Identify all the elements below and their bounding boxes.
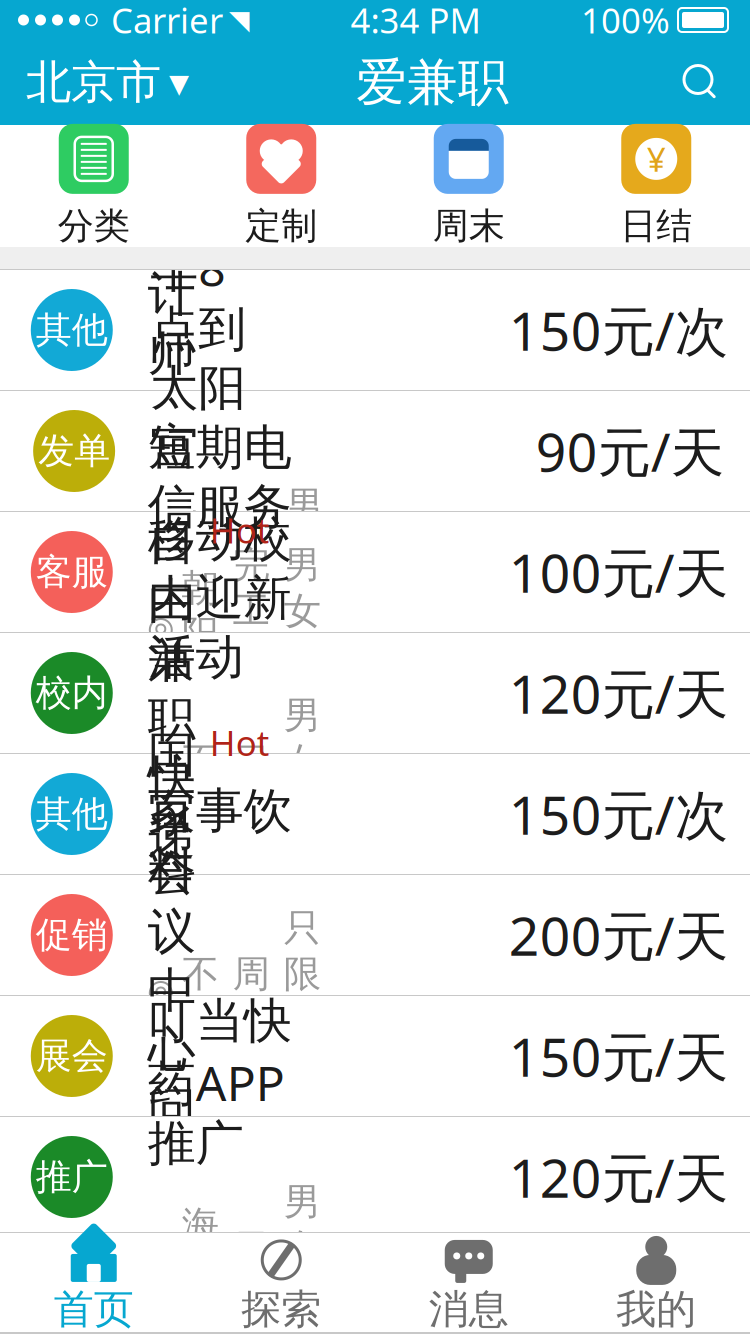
- staticText: 周结: [233, 951, 270, 1043]
- button[interactable]: 客服: [0, 512, 750, 633]
- staticText: 不限: [182, 739, 219, 830]
- staticText: 男女不限: [284, 693, 321, 876]
- staticText: 100元/天: [509, 537, 728, 607]
- staticText: 消息: [429, 1285, 509, 1334]
- staticText: 推广: [36, 1155, 108, 1199]
- staticText: 日结: [235, 528, 272, 620]
- staticText: 校内: [36, 671, 108, 715]
- button[interactable]: 其他: [0, 754, 750, 875]
- staticText: Carrier: [111, 0, 223, 43]
- staticText: 4:34 PM: [350, 0, 480, 43]
- staticText: 日结: [233, 1249, 270, 1334]
- staticText: 120元/天: [509, 658, 728, 728]
- staticText: 其他: [36, 308, 108, 352]
- staticText: 男女不限: [286, 483, 323, 666]
- staticText: 周末: [433, 204, 505, 248]
- staticText: ◥: [229, 5, 250, 35]
- staticText: 百事饮料: [148, 781, 292, 899]
- staticText: 90元/天: [536, 416, 724, 486]
- staticText: 朝阳区: [182, 565, 219, 703]
- staticText: 男女不限: [284, 389, 321, 572]
- staticText: 男女不限: [284, 1179, 321, 1334]
- staticText: 我的: [616, 1285, 696, 1334]
- staticText: 日结: [233, 1225, 270, 1317]
- staticText: 朝阳区: [182, 1226, 219, 1334]
- staticText: 只限女生: [284, 1203, 321, 1334]
- staticText: ¥: [647, 137, 666, 181]
- staticText: 周结: [233, 977, 270, 1069]
- staticText: 定制: [245, 204, 317, 248]
- staticText: 日结: [233, 739, 270, 830]
- staticText: 100%: [581, 0, 670, 43]
- staticText: 150元/次: [509, 295, 728, 365]
- button[interactable]: 定制: [187, 124, 375, 248]
- button[interactable]: 北京市: [0, 43, 189, 122]
- staticText: 200元/天: [509, 900, 728, 970]
- staticText: 日结: [620, 204, 692, 248]
- button[interactable]: 展会: [0, 996, 750, 1117]
- button[interactable]: 促销: [0, 875, 750, 996]
- staticText: ▾: [169, 60, 189, 105]
- staticText: 东城区: [182, 955, 219, 1092]
- staticText: 120元/天: [509, 1142, 728, 1212]
- staticText: 发单: [38, 429, 110, 473]
- button[interactable]: ¥: [562, 124, 750, 248]
- staticText: Hot: [210, 82, 270, 128]
- staticText: 叮当快药APP推广: [148, 991, 292, 1173]
- staticText: 客服: [36, 550, 108, 594]
- staticText: 完工结算: [233, 542, 270, 726]
- button[interactable]: 消息: [375, 1231, 562, 1334]
- button[interactable]: 发单: [0, 391, 750, 512]
- staticText: 早8点到太阳宫: [150, 236, 246, 477]
- staticText: 北京市: [26, 55, 161, 110]
- button[interactable]: 周末: [375, 124, 562, 248]
- staticText: 男女不限: [284, 542, 321, 726]
- button[interactable]: 其他: [0, 270, 750, 391]
- staticText: 不限: [182, 951, 219, 1043]
- button[interactable]: 校内: [0, 633, 750, 754]
- staticText: 现结: [233, 434, 270, 526]
- staticText: 海淀区: [182, 1202, 219, 1334]
- staticText: 展会: [36, 1034, 108, 1078]
- staticText: Hot: [210, 719, 270, 765]
- staticText: 只限男生: [284, 932, 321, 1115]
- staticText: 150元/次: [509, 779, 728, 849]
- staticText: 国家会议中心问卷: [148, 725, 196, 1197]
- staticText: Hot: [260, 230, 320, 276]
- button[interactable]: 分类: [0, 124, 187, 248]
- staticText: 短期电信服务: [148, 418, 292, 536]
- staticText: 特效设计师: [148, 88, 196, 383]
- button[interactable]: 探索: [187, 1231, 375, 1334]
- button[interactable]: 推广: [0, 1117, 750, 1238]
- staticText: 分类: [58, 204, 130, 248]
- button[interactable]: 搜索: [676, 58, 750, 106]
- staticText: 其他: [36, 792, 108, 836]
- staticText: 朝阳区: [184, 505, 221, 643]
- staticText: 移动校内迎新活动: [148, 510, 292, 687]
- staticText: 只限女生: [284, 905, 321, 1089]
- staticText: 朝阳区: [182, 412, 219, 549]
- button[interactable]: 我的: [562, 1231, 750, 1334]
- staticText: 探索: [241, 1285, 321, 1334]
- staticText: 促销: [36, 913, 108, 957]
- staticText: 首页: [54, 1285, 134, 1334]
- staticText: Hot: [210, 507, 270, 553]
- staticText: 150元/天: [509, 1021, 728, 1091]
- staticText: 自由兼职快递员: [148, 513, 196, 926]
- staticText: 爱兼职: [356, 51, 509, 114]
- button[interactable]: 首页: [0, 1231, 187, 1334]
